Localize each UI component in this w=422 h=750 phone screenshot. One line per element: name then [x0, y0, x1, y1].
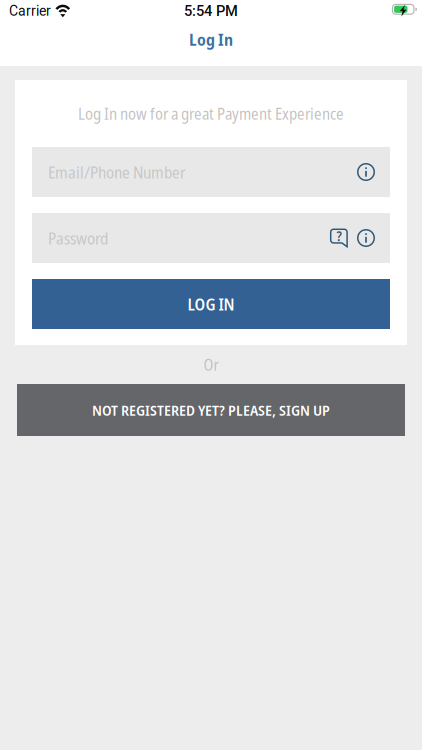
button[interactable]: Email or phone number information	[355, 161, 377, 183]
button[interactable]: LOG IN	[32, 279, 390, 329]
staticText: Carrier	[9, 3, 51, 19]
staticText: NOT REGISTERED YET? PLEASE, SIGN UP	[92, 400, 330, 420]
staticText: Email/Phone Number	[48, 161, 186, 183]
button[interactable]: Log In	[0, 22, 422, 66]
staticText: 5:54 PM	[184, 2, 238, 20]
staticText: LOG IN	[187, 293, 234, 315]
button[interactable]: Password information	[355, 227, 377, 249]
staticText: ?	[336, 226, 341, 245]
staticText: Password	[48, 227, 108, 249]
button[interactable]: Password help	[329, 227, 349, 249]
staticText: Log In now for a great Payment Experienc…	[78, 102, 344, 125]
staticText: Or	[203, 354, 218, 375]
staticText: Log In	[189, 28, 233, 51]
button[interactable]: NOT REGISTERED YET? PLEASE, SIGN UP	[17, 384, 405, 436]
